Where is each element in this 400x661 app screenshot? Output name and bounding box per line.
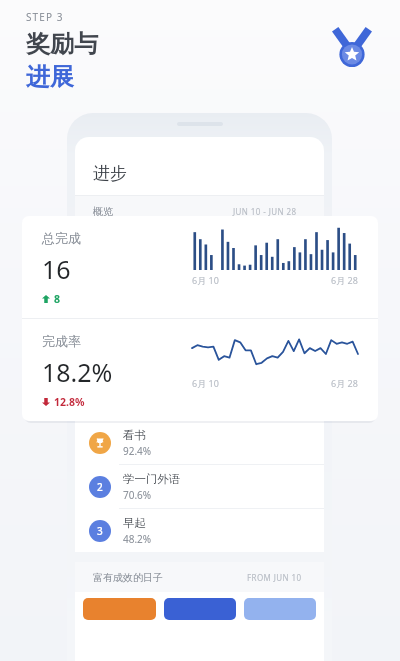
staticText: FROM JUN 10 — [247, 572, 302, 583]
button[interactable]: Reward medal — [324, 22, 380, 78]
button[interactable]: 2 — [75, 465, 324, 508]
button[interactable] — [244, 598, 316, 620]
button[interactable]: 完成率 — [22, 319, 378, 421]
staticText: 16 — [42, 252, 71, 286]
staticText: STEP 3 — [26, 10, 64, 24]
staticText: 奖励与 — [26, 29, 98, 59]
staticText: 92.4% — [123, 444, 152, 458]
button[interactable]: 3 — [75, 509, 324, 552]
staticText: 3 — [97, 524, 103, 538]
staticText: 完成率 — [42, 333, 81, 349]
staticText: 48.2% — [123, 532, 152, 546]
button[interactable] — [164, 598, 236, 620]
staticText: 6月 28 — [331, 274, 358, 286]
staticText: 看书 — [123, 428, 146, 442]
staticText: 总完成 — [42, 230, 81, 246]
button[interactable] — [83, 598, 156, 620]
staticText: 70.6% — [123, 488, 152, 502]
button[interactable]: 看书 — [75, 421, 324, 464]
staticText: 8 — [54, 292, 61, 306]
staticText: 12.8% — [54, 395, 85, 409]
staticText: 早起 — [123, 516, 146, 530]
staticText: 概览 — [93, 205, 113, 218]
staticText: 18.2% — [42, 355, 113, 389]
staticText: 2 — [97, 480, 103, 494]
staticText: 进步 — [93, 163, 127, 184]
staticText: JUN 10 - JUN 28 — [233, 206, 297, 217]
staticText: 6月 10 — [192, 377, 219, 389]
staticText: 6月 10 — [192, 274, 219, 286]
staticText: 进展 — [26, 62, 74, 92]
button[interactable]: 总完成 — [22, 216, 378, 318]
staticText: 6月 28 — [331, 377, 358, 389]
staticText: 学一门外语 — [123, 472, 181, 486]
staticText: 富有成效的日子 — [93, 571, 163, 584]
